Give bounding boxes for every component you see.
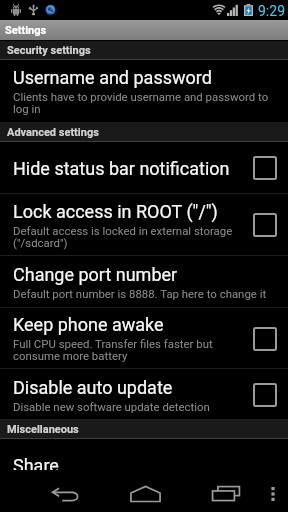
staticText: Settings xyxy=(5,24,47,37)
button[interactable]: Change port number xyxy=(0,256,288,308)
staticText: Change port number xyxy=(13,264,178,285)
button[interactable]: Share xyxy=(0,439,288,491)
staticText: Disable auto update xyxy=(13,377,173,398)
staticText: Full CPU speed. Transfer files faster bu… xyxy=(13,337,239,363)
button[interactable]: Keep phone awake xyxy=(0,308,288,369)
button[interactable]: Lock access in ROOT ("/") xyxy=(0,194,288,256)
staticText: Lock access in ROOT ("/") xyxy=(13,201,218,222)
button[interactable]: Home xyxy=(109,470,181,512)
staticText: Advanced settings xyxy=(7,126,99,139)
button[interactable]: Recent apps xyxy=(191,470,261,512)
staticText: Miscellaneous xyxy=(7,423,79,436)
button[interactable]: Username and password xyxy=(0,60,288,123)
staticText: Clients have to provide username and pas… xyxy=(13,90,277,116)
staticText: Username and password xyxy=(13,67,212,88)
staticText: Default port number is 8888. Tap here to… xyxy=(13,287,267,300)
button[interactable]: Disable auto update xyxy=(0,369,288,420)
staticText: Hide status bar notification xyxy=(13,158,230,179)
staticText: Keep phone awake xyxy=(13,314,164,335)
staticText: 9:29 xyxy=(258,3,285,19)
staticText: Security settings xyxy=(7,44,91,57)
staticText: Disable new software update detection xyxy=(13,400,210,413)
button[interactable]: More options xyxy=(259,470,288,512)
staticText: Share xyxy=(13,455,59,476)
button[interactable]: Hide status bar notification xyxy=(0,142,288,194)
button[interactable]: Back xyxy=(28,470,100,512)
staticText: Default access is locked in external sto… xyxy=(13,224,239,250)
